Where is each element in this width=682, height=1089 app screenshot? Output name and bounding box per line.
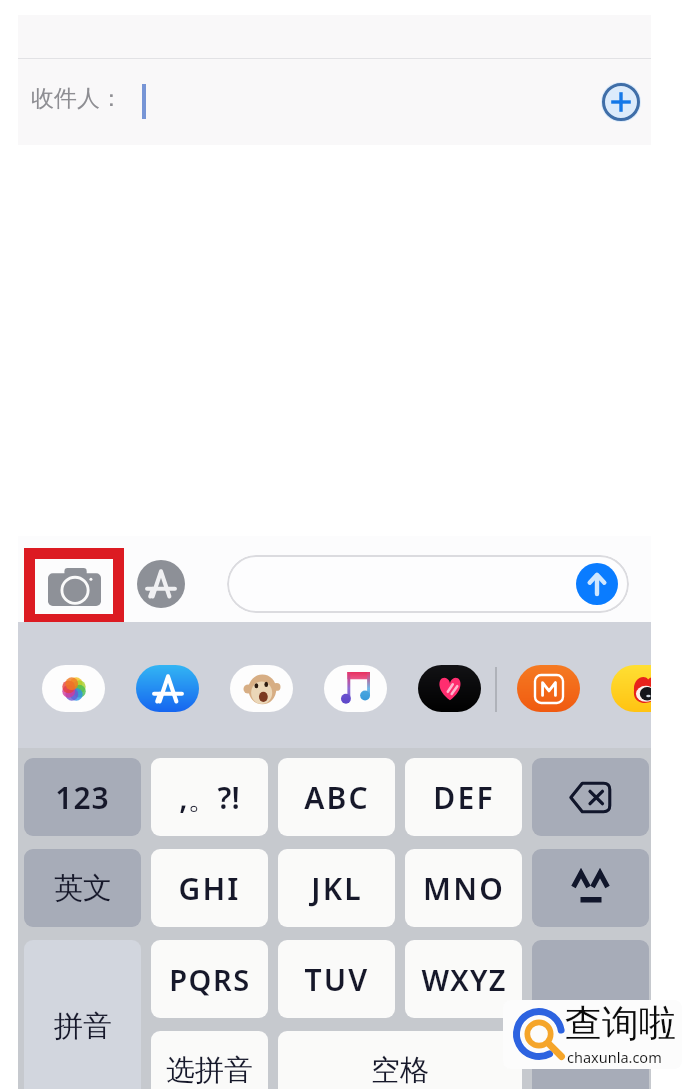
button[interactable]: 选拼音 (151, 1031, 268, 1089)
staticText: WXYZ (421, 960, 507, 999)
button[interactable]: App (42, 665, 105, 712)
button[interactable]: ,。?! (151, 758, 268, 836)
button[interactable]: TUV (278, 940, 395, 1018)
button[interactable]: Send (576, 563, 618, 605)
staticText: MNO (423, 868, 505, 909)
button[interactable]: WXYZ (405, 940, 522, 1018)
staticText: TUV (304, 959, 370, 1000)
button[interactable]: App Store (137, 560, 185, 608)
button[interactable]: App Store (136, 665, 199, 712)
button[interactable]: Weibo (611, 665, 651, 712)
button[interactable]: Mango TV (517, 665, 580, 712)
button[interactable]: 123 (24, 758, 141, 836)
button[interactable]: 收件人： (18, 59, 651, 145)
staticText: ABC (304, 777, 370, 818)
staticText: JKL (311, 868, 363, 909)
staticText: DEF (433, 777, 495, 818)
staticText: GHI (178, 868, 241, 909)
other: Backspace (570, 782, 611, 813)
button[interactable]: Digital Touch (418, 665, 481, 712)
staticText: 选拼音 (166, 1052, 253, 1089)
button[interactable]: 英文 (24, 849, 141, 927)
button[interactable]: Return (532, 940, 649, 1089)
button[interactable]: MNO (405, 849, 522, 927)
button[interactable]: Camera (24, 548, 124, 625)
button[interactable]: App (230, 665, 293, 712)
button[interactable]: JKL (278, 849, 395, 927)
button[interactable]: GHI (151, 849, 268, 927)
staticText: 拼音 (54, 1008, 112, 1045)
other: Emoticons (571, 871, 611, 905)
button[interactable]: PQRS (151, 940, 268, 1018)
staticText: PQRS (169, 960, 251, 999)
button[interactable] (227, 555, 629, 613)
button[interactable]: ABC (278, 758, 395, 836)
button[interactable]: Emoticons (532, 849, 649, 927)
button[interactable]: App (324, 665, 387, 712)
button[interactable]: DEF (405, 758, 522, 836)
staticText: 收件人： (31, 84, 123, 113)
staticText: ,。?! (179, 777, 240, 818)
staticText: 空格 (371, 1052, 429, 1089)
button[interactable]: Backspace (532, 758, 649, 836)
staticText: chaxunla.com (567, 1047, 662, 1067)
staticText: 123 (55, 777, 110, 818)
button[interactable]: 空格 (278, 1031, 522, 1089)
button[interactable]: Add recipient (601, 82, 641, 122)
staticText: 英文 (54, 870, 112, 907)
button[interactable]: 拼音 (24, 940, 141, 1089)
staticText: 查询啦 (565, 1000, 676, 1047)
